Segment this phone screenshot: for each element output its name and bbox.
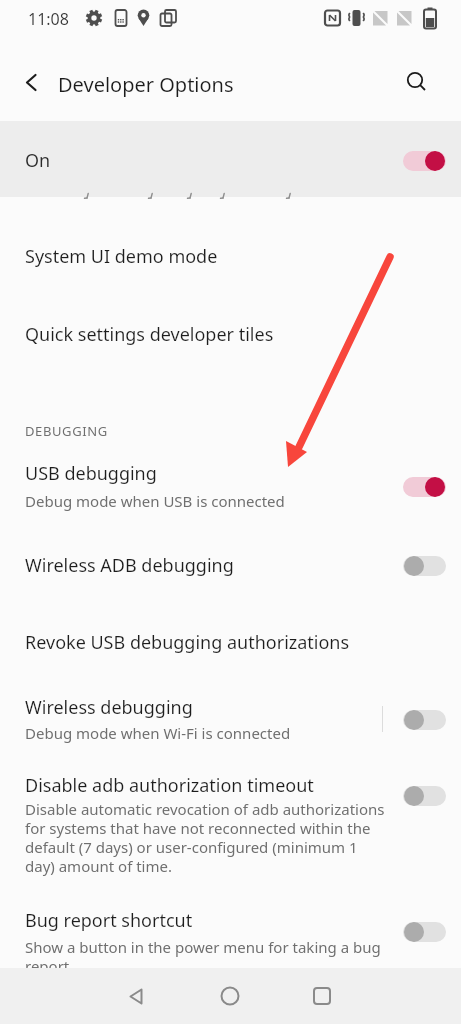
button[interactable] — [400, 65, 434, 99]
staticText: Revoke USB debugging authorizations — [25, 630, 350, 655]
button[interactable]: Disable adb authorization timeout — [0, 758, 461, 880]
button[interactable]: Wireless debugging — [0, 681, 461, 758]
staticText: Bug report shortcut — [25, 908, 193, 933]
staticText: Show a button in the power menu for taki… — [25, 937, 381, 968]
button[interactable] — [403, 477, 446, 497]
button[interactable] — [403, 710, 446, 730]
button[interactable] — [403, 151, 446, 171]
button[interactable] — [403, 922, 446, 942]
staticText: USB debugging — [25, 461, 157, 486]
button[interactable] — [298, 972, 346, 1020]
button[interactable] — [403, 556, 446, 576]
staticText: DEBUGGING — [25, 422, 108, 440]
button[interactable] — [112, 972, 160, 1020]
button[interactable]: Wireless ADB debugging — [0, 527, 461, 604]
button[interactable]: System UI demo mode — [0, 218, 461, 295]
staticText: Debug mode when Wi-Fi is connected — [25, 723, 291, 743]
button[interactable]: Revoke USB debugging authorizations — [0, 604, 461, 681]
button[interactable] — [16, 66, 48, 98]
staticText: Quick settings developer tiles — [25, 322, 274, 347]
staticText: Developer Options — [58, 71, 234, 98]
button[interactable]: Bug report shortcut — [0, 895, 461, 968]
button[interactable]: Quick settings developer tiles — [0, 295, 461, 373]
staticText: Wireless debugging — [25, 695, 193, 720]
button[interactable]: USB debugging — [0, 447, 461, 527]
button[interactable] — [403, 786, 446, 806]
staticText: On — [25, 148, 51, 173]
staticText: Debug mode when USB is connected — [25, 491, 285, 511]
staticText: Disable adb authorization timeout — [25, 773, 314, 798]
staticText: System UI demo mode — [25, 244, 218, 269]
staticText: Disable automatic revocation of adb auth… — [25, 799, 385, 876]
staticText: Wireless ADB debugging — [25, 553, 234, 578]
staticText: 11:08 — [28, 8, 69, 30]
button[interactable]: On — [0, 121, 461, 197]
button[interactable] — [206, 972, 254, 1020]
